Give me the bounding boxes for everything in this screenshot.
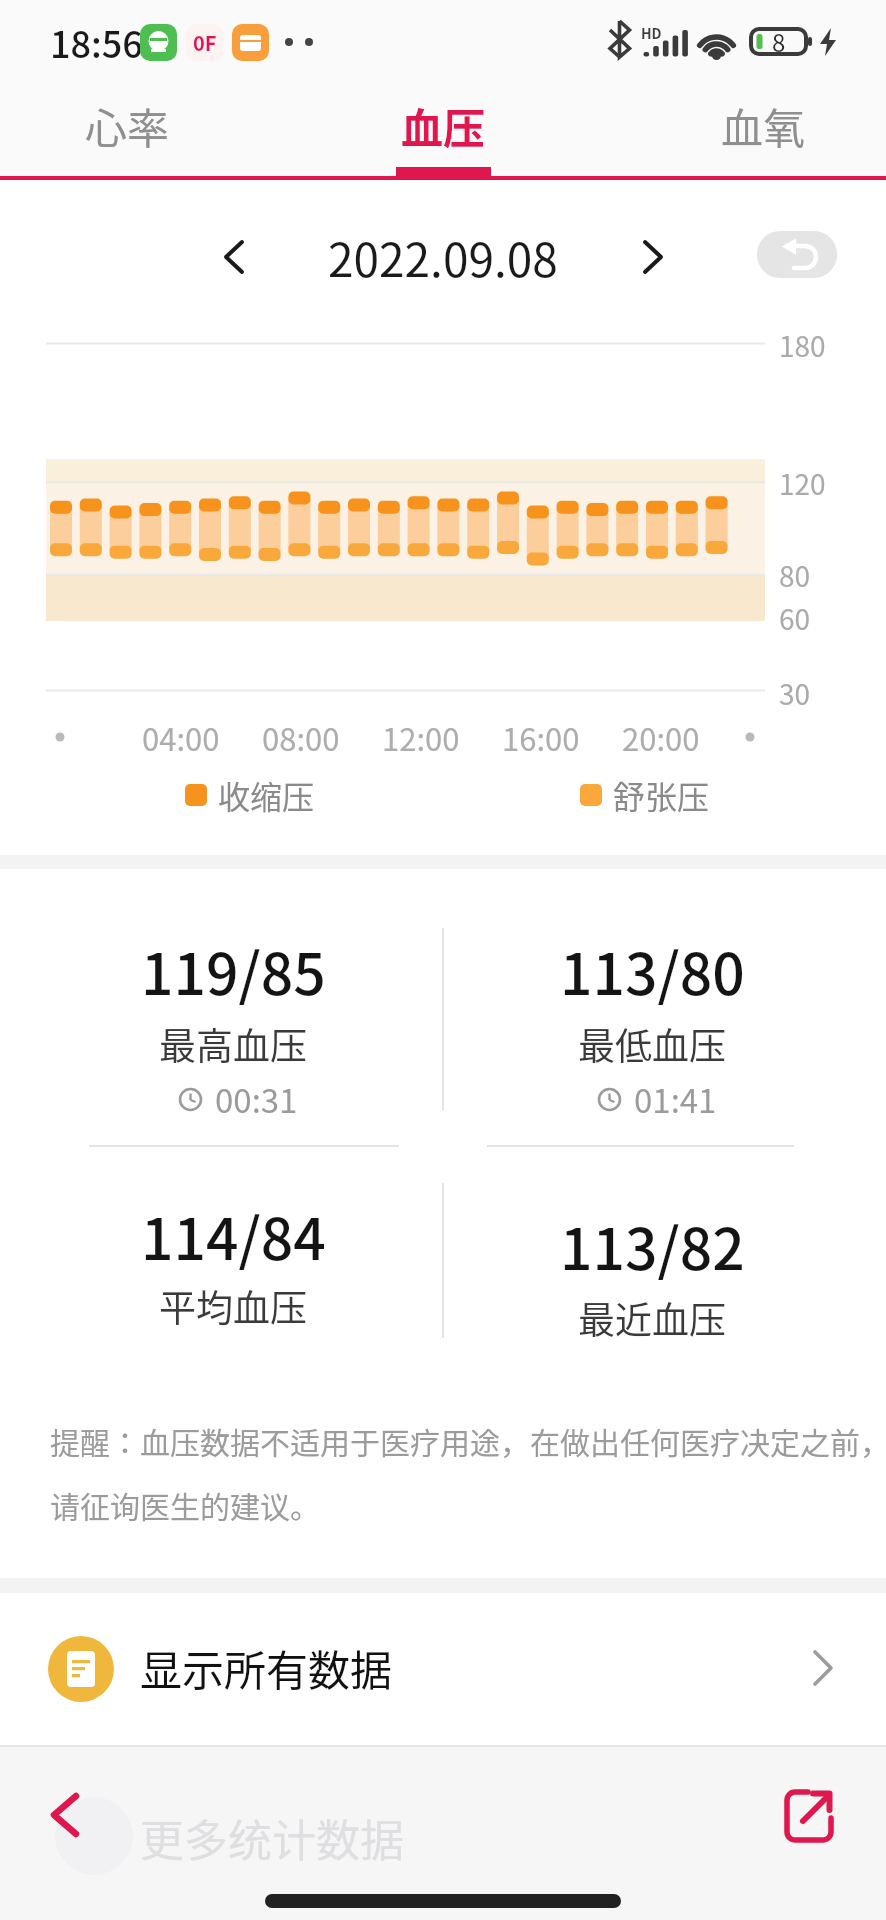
- button[interactable]: [641, 240, 665, 274]
- staticText: 119/85: [141, 929, 326, 1009]
- button[interactable]: [48, 1793, 82, 1837]
- staticText: 18:56: [50, 16, 143, 68]
- button[interactable]: [784, 1787, 834, 1845]
- staticText: 114/84: [141, 1194, 326, 1274]
- staticText: 12:00: [382, 715, 460, 760]
- staticText: 00:31: [215, 1075, 298, 1123]
- staticText: 舒张压: [613, 772, 710, 818]
- button[interactable]: 显示所有数据: [0, 1593, 886, 1745]
- staticText: 113/82: [560, 1204, 745, 1284]
- staticText: 显示所有数据: [140, 1637, 393, 1698]
- staticText: 收缩压: [218, 772, 315, 818]
- button[interactable]: [757, 231, 837, 278]
- staticText: 08:00: [262, 715, 340, 760]
- button[interactable]: 心率: [47, 90, 207, 160]
- staticText: 最近血压: [578, 1291, 726, 1345]
- staticText: 血压: [401, 95, 486, 156]
- button[interactable]: [222, 240, 246, 274]
- button[interactable]: 血氧: [683, 90, 843, 160]
- staticText: 平均血压: [159, 1279, 307, 1333]
- staticText: 心率: [85, 95, 170, 156]
- staticText: 01:41: [634, 1075, 717, 1123]
- staticText: 80: [779, 555, 811, 596]
- staticText: 更多统计数据: [140, 1806, 404, 1870]
- staticText: 8: [772, 24, 786, 59]
- staticText: 60: [779, 598, 811, 639]
- staticText: HD: [641, 23, 662, 43]
- staticText: 0F: [193, 28, 217, 57]
- staticText: 120: [779, 463, 826, 504]
- staticText: 最低血压: [578, 1017, 726, 1071]
- staticText: 20:00: [622, 715, 700, 760]
- staticText: 2022.09.08: [328, 224, 558, 291]
- staticText: 提醒：血压数据不适用于医疗用途，在做出任何医疗决定之前，: [50, 1419, 880, 1462]
- button[interactable]: 血压: [363, 90, 523, 160]
- staticText: 04:00: [142, 715, 220, 760]
- staticText: 180: [779, 325, 826, 366]
- staticText: 血氧: [721, 95, 806, 156]
- staticText: 113/80: [560, 929, 745, 1009]
- staticText: 请征询医生的建议。: [50, 1483, 320, 1526]
- staticText: 16:00: [502, 715, 580, 760]
- staticText: 最高血压: [159, 1017, 307, 1071]
- staticText: 30: [779, 673, 811, 714]
